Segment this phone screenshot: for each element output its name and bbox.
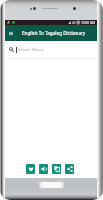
staticText: English To Tagalog Dictionary [22,30,86,36]
button[interactable]: Menu [7,29,14,37]
staticText: 4G [72,21,76,25]
button[interactable]: Speak [39,164,48,174]
button[interactable]: Copy [52,164,61,174]
button[interactable]: Home [39,181,64,189]
staticText: 10:50 AM [81,21,95,25]
staticText: Search Words [18,47,44,52]
button[interactable]: Favorites [26,164,35,174]
button[interactable]: Share [65,164,74,174]
